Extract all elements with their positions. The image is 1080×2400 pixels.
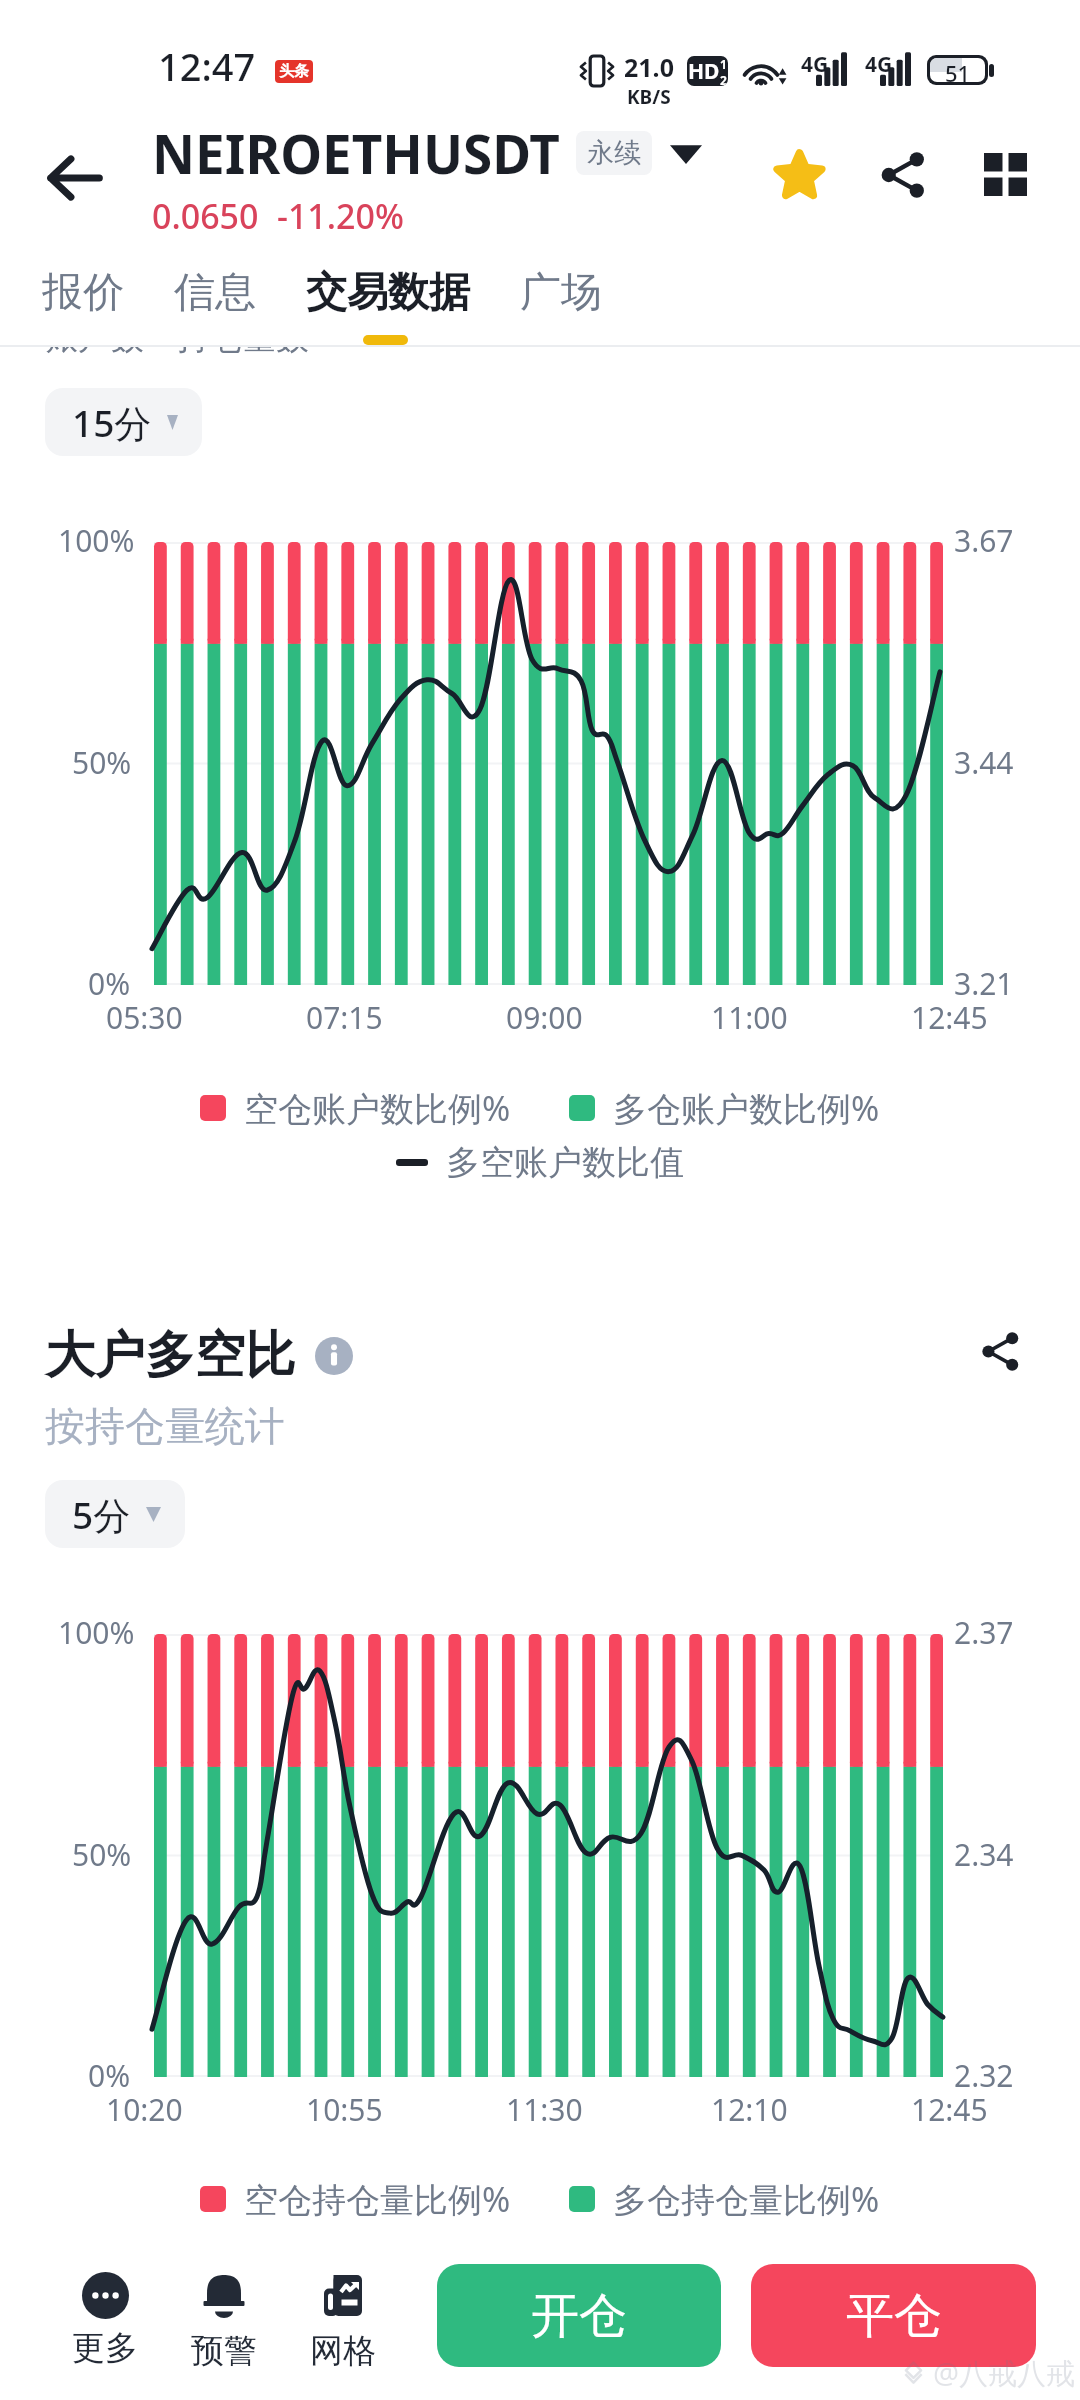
staticText: 100% bbox=[58, 1612, 135, 1653]
staticText: 1 bbox=[720, 56, 727, 72]
staticText: 信息 bbox=[174, 267, 256, 319]
staticText: 50% bbox=[72, 1834, 132, 1875]
staticText: 平仓 bbox=[846, 2286, 942, 2346]
staticText: 51 bbox=[945, 58, 971, 82]
staticText: 07:15 bbox=[306, 997, 383, 1038]
button[interactable]: 开仓 bbox=[437, 2264, 721, 2367]
staticText: 15分 bbox=[72, 397, 152, 448]
staticText: 永续 bbox=[587, 136, 641, 170]
staticText: 2.37 bbox=[954, 1612, 1014, 1653]
staticText: 12:45 bbox=[911, 997, 988, 1038]
staticText: 网格 bbox=[310, 2330, 376, 2372]
staticText: 广场 bbox=[520, 267, 602, 319]
staticText: 预警 bbox=[191, 2330, 257, 2372]
staticText: 多仓账户数比例% bbox=[613, 1085, 880, 1131]
button[interactable]: 更多 bbox=[45, 2272, 165, 2369]
button[interactable]: 平仓 bbox=[751, 2264, 1036, 2367]
staticText: 11:00 bbox=[711, 997, 788, 1038]
staticText: 0% bbox=[88, 963, 131, 1004]
staticText: 10:20 bbox=[106, 2089, 183, 2130]
staticText: 0.0650 bbox=[152, 193, 259, 239]
staticText: 2.32 bbox=[954, 2055, 1014, 2096]
staticText: 0% bbox=[88, 2055, 131, 2096]
staticText: 报价 bbox=[42, 267, 124, 319]
staticText: 交易数据 bbox=[306, 267, 470, 319]
staticText: 更多 bbox=[72, 2327, 138, 2369]
staticText: 21.0 bbox=[624, 50, 674, 84]
staticText: 多空账户数比值 bbox=[446, 1141, 684, 1184]
staticText: 3.44 bbox=[954, 742, 1014, 783]
button[interactable]: More layouts bbox=[954, 123, 1057, 226]
button[interactable]: Share bbox=[962, 1313, 1038, 1389]
staticText: 2.34 bbox=[954, 1834, 1014, 1875]
staticText: 空仓持仓量比例% bbox=[244, 2176, 511, 2222]
staticText: 12:10 bbox=[711, 2089, 788, 2130]
staticText: 12:45 bbox=[911, 2089, 988, 2130]
staticText: 账户数 bbox=[45, 317, 144, 359]
staticText: 3.21 bbox=[954, 963, 1014, 1004]
staticText: 3.67 bbox=[954, 520, 1014, 561]
staticText: @八戒八戒 bbox=[933, 2353, 1076, 2393]
staticText: 4G bbox=[801, 50, 829, 79]
button[interactable]: 15分 bbox=[45, 388, 202, 456]
staticText: 开仓 bbox=[531, 2286, 627, 2346]
staticText: 09:00 bbox=[506, 997, 583, 1038]
staticText: 大户多空比 bbox=[45, 1324, 295, 1387]
staticText: 按持仓量统计 bbox=[45, 1401, 285, 1451]
staticText: 持仓量数 bbox=[177, 317, 309, 359]
button[interactable]: Back bbox=[20, 123, 130, 233]
staticText: 10:55 bbox=[306, 2089, 383, 2130]
button[interactable]: 预警 bbox=[164, 2272, 284, 2372]
button[interactable]: 交易数据 bbox=[306, 267, 470, 319]
button[interactable]: 5分 bbox=[45, 1480, 185, 1548]
button[interactable]: 报价 bbox=[42, 267, 124, 319]
staticText: 12:47 bbox=[158, 40, 256, 92]
button[interactable]: Share bbox=[851, 123, 954, 226]
button[interactable]: Favorite bbox=[748, 123, 851, 226]
staticText: 多仓持仓量比例% bbox=[613, 2176, 880, 2222]
staticText: HD bbox=[688, 57, 720, 86]
button[interactable]: 信息 bbox=[174, 267, 256, 319]
button[interactable]: 网格 bbox=[283, 2272, 403, 2372]
staticText: 5分 bbox=[72, 1489, 131, 1540]
staticText: 4G bbox=[865, 50, 893, 79]
button[interactable]: 广场 bbox=[520, 267, 602, 319]
staticText: KB/S bbox=[627, 84, 671, 110]
staticText: 100% bbox=[58, 520, 135, 561]
staticText: 空仓账户数比例% bbox=[244, 1085, 511, 1131]
staticText: 11:30 bbox=[506, 2089, 583, 2130]
staticText: 05:30 bbox=[106, 997, 183, 1038]
staticText: NEIROETHUSDT bbox=[152, 117, 560, 189]
staticText: 头条 bbox=[279, 62, 309, 81]
staticText: -11.20% bbox=[277, 193, 404, 239]
staticText: 2 bbox=[720, 72, 727, 86]
staticText: 50% bbox=[72, 742, 132, 783]
